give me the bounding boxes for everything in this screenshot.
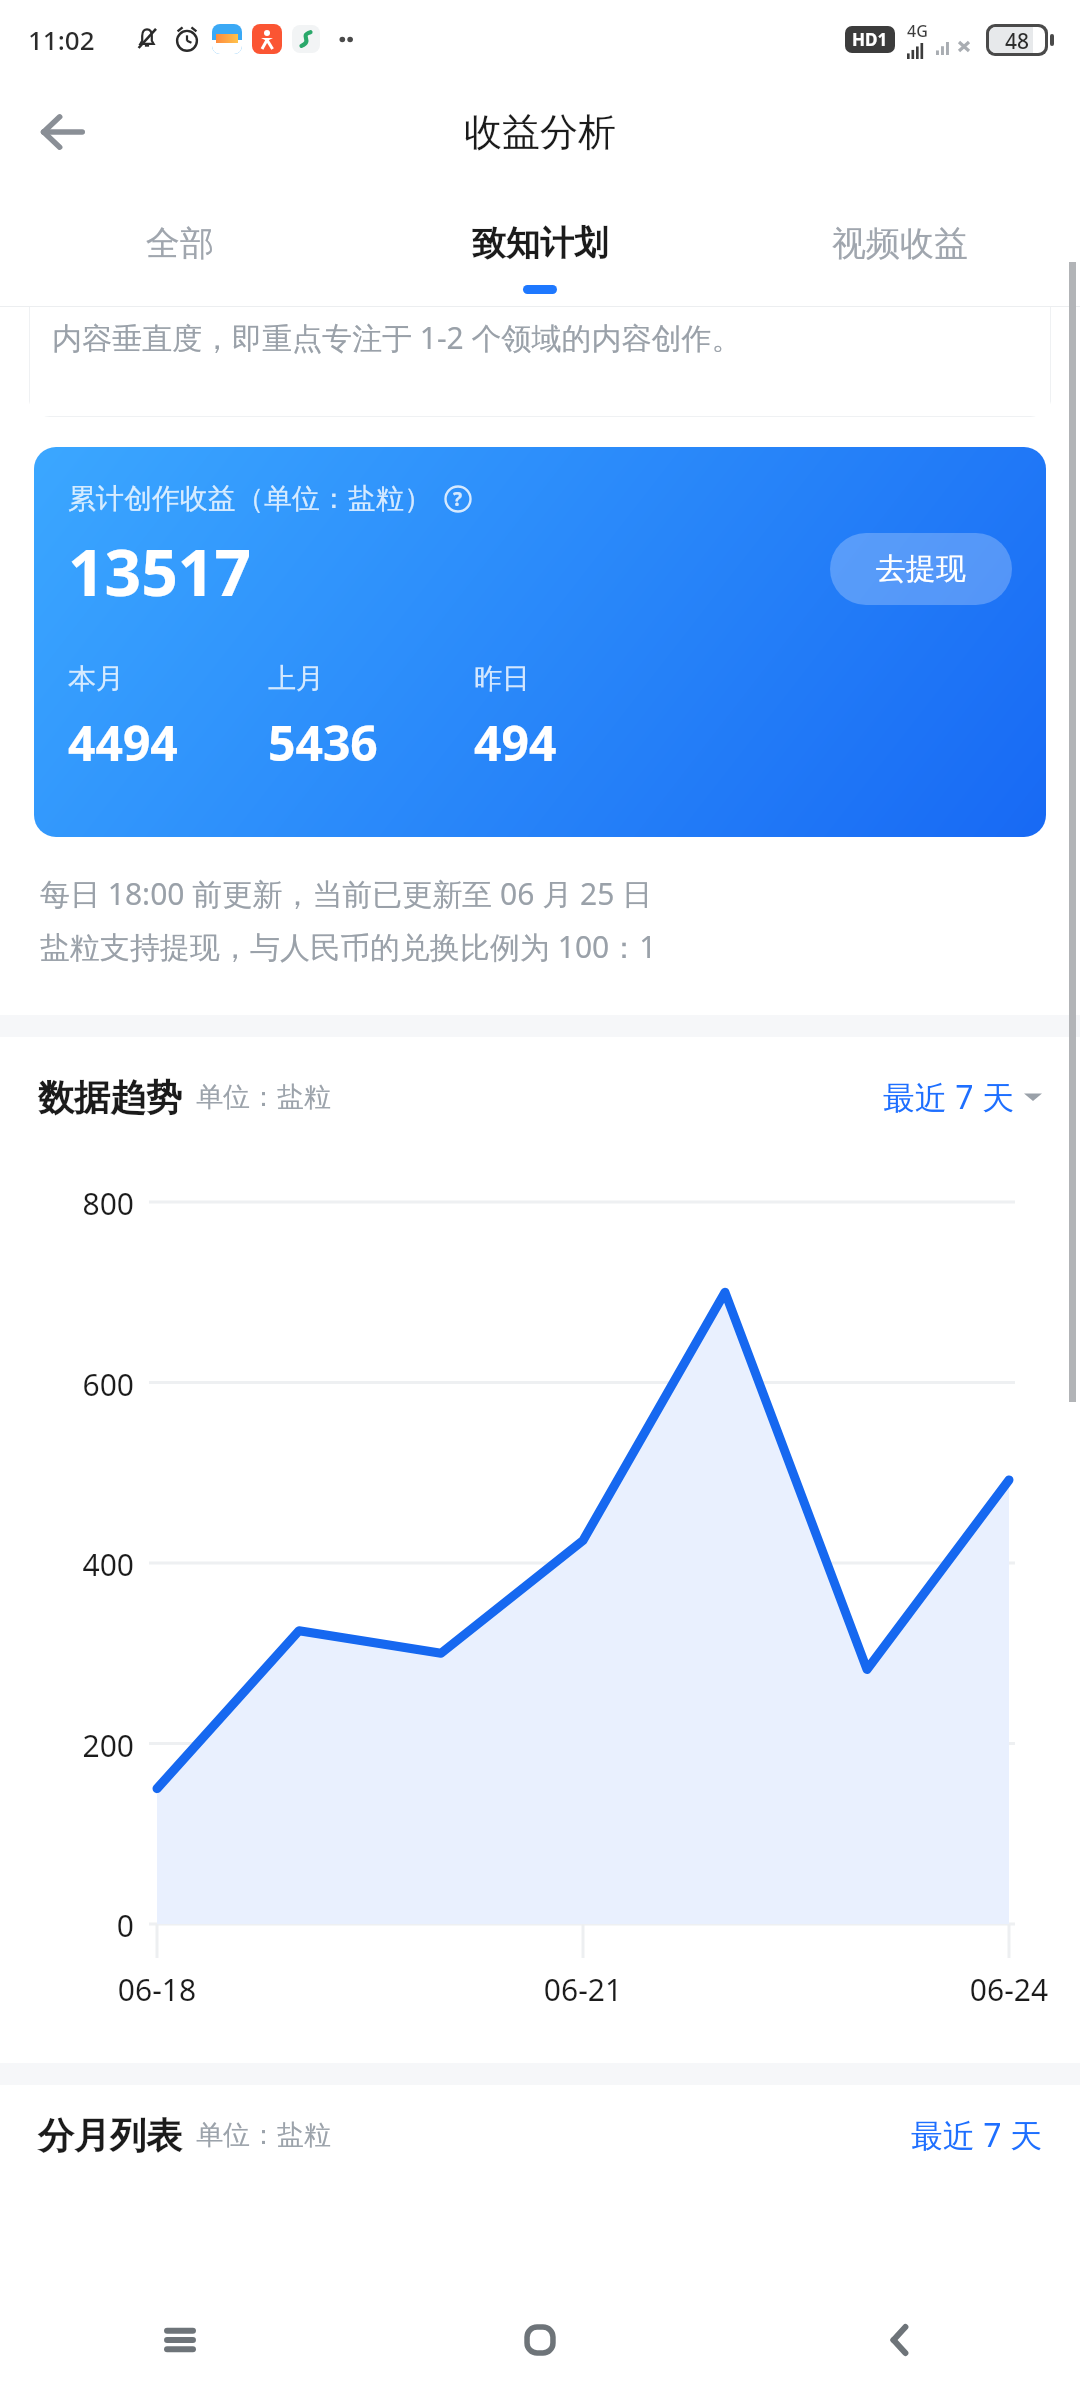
staticText: ? <box>453 486 463 512</box>
staticText: 400 <box>0 1544 134 1585</box>
button[interactable]: 返回 <box>24 94 100 170</box>
staticText: 上月 <box>268 661 324 696</box>
staticText: 致知计划 <box>472 222 608 265</box>
button[interactable]: 视频收益 <box>720 186 1080 306</box>
staticText: 最近 7 天 <box>883 1075 1014 1119</box>
staticText: 分月列表 <box>38 2113 182 2158</box>
staticText: 内容垂直度，即重点专注于 1-2 个领域的内容创作。 <box>52 317 742 358</box>
staticText: 全部 <box>146 222 214 265</box>
staticText: 数据趋势 <box>38 1075 182 1120</box>
button[interactable]: 最近 7 天 <box>883 1075 1042 1119</box>
staticText: 去提现 <box>876 550 966 588</box>
staticText: 每日 18:00 前更新，当前已更新至 06 月 25 日 <box>40 873 653 914</box>
staticText: 06-24 <box>929 1969 1080 2010</box>
staticText: 昨日 <box>474 661 530 696</box>
staticText: 视频收益 <box>832 222 968 265</box>
button[interactable]: Recents <box>0 2280 360 2400</box>
button[interactable]: 致知计划 <box>360 186 720 306</box>
staticText: 800 <box>0 1183 134 1224</box>
staticText: 累计创作收益（单位：盐粒） <box>68 481 432 516</box>
staticText: 单位：盐粒 <box>196 1080 331 1114</box>
button[interactable]: Back <box>720 2280 1080 2400</box>
staticText: 600 <box>0 1364 134 1405</box>
staticText: 5436 <box>268 710 378 775</box>
staticText: 本月 <box>68 661 124 696</box>
staticText: 4494 <box>68 710 178 775</box>
button[interactable]: 说明 <box>442 483 474 515</box>
staticText: 06-18 <box>77 1969 237 2010</box>
staticText: HD1 <box>852 28 888 51</box>
button[interactable]: 最近 7 天 <box>911 2113 1042 2157</box>
staticText: 48 <box>1005 27 1030 53</box>
staticText: 13517 <box>68 528 252 615</box>
staticText: 盐粒支持提现，与人民币的兑换比例为 100：1 <box>40 926 657 967</box>
staticText: 0 <box>0 1905 134 1946</box>
button[interactable]: Home <box>360 2280 720 2400</box>
staticText: 200 <box>0 1725 134 1766</box>
button[interactable]: 全部 <box>0 186 360 306</box>
button[interactable]: 去提现 <box>830 533 1012 605</box>
staticText: 11:02 <box>28 22 95 57</box>
staticText: 收益分析 <box>464 108 616 156</box>
staticText: 494 <box>474 710 557 775</box>
staticText: 4G <box>907 20 928 42</box>
staticText: 06-21 <box>503 1969 663 2010</box>
staticText: 单位：盐粒 <box>196 2118 331 2152</box>
